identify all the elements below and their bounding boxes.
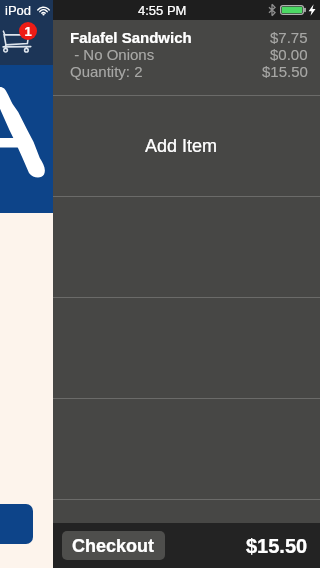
staticText: 4:55 PM bbox=[138, 3, 187, 18]
staticText: iPod bbox=[5, 3, 32, 18]
staticText: Falafel Sandwich bbox=[70, 29, 192, 46]
staticText: $15.50 bbox=[246, 535, 308, 557]
button[interactable]: Cart bbox=[3, 31, 31, 53]
staticText: Add Item bbox=[145, 136, 218, 156]
button[interactable]: Checkout bbox=[62, 531, 165, 560]
button[interactable]: Falafel Sandwich bbox=[53, 20, 320, 95]
staticText: $15.50 bbox=[262, 63, 308, 80]
staticText: Quantity: 2 bbox=[70, 63, 143, 80]
staticText: $0.00 bbox=[270, 46, 308, 63]
button[interactable]: Add Item bbox=[53, 96, 320, 196]
staticText: $7.75 bbox=[270, 29, 308, 46]
staticText: - No Onions bbox=[70, 46, 155, 63]
button[interactable]: Action bbox=[0, 504, 33, 544]
staticText: 1 bbox=[24, 24, 32, 39]
staticText: Checkout bbox=[72, 536, 155, 556]
